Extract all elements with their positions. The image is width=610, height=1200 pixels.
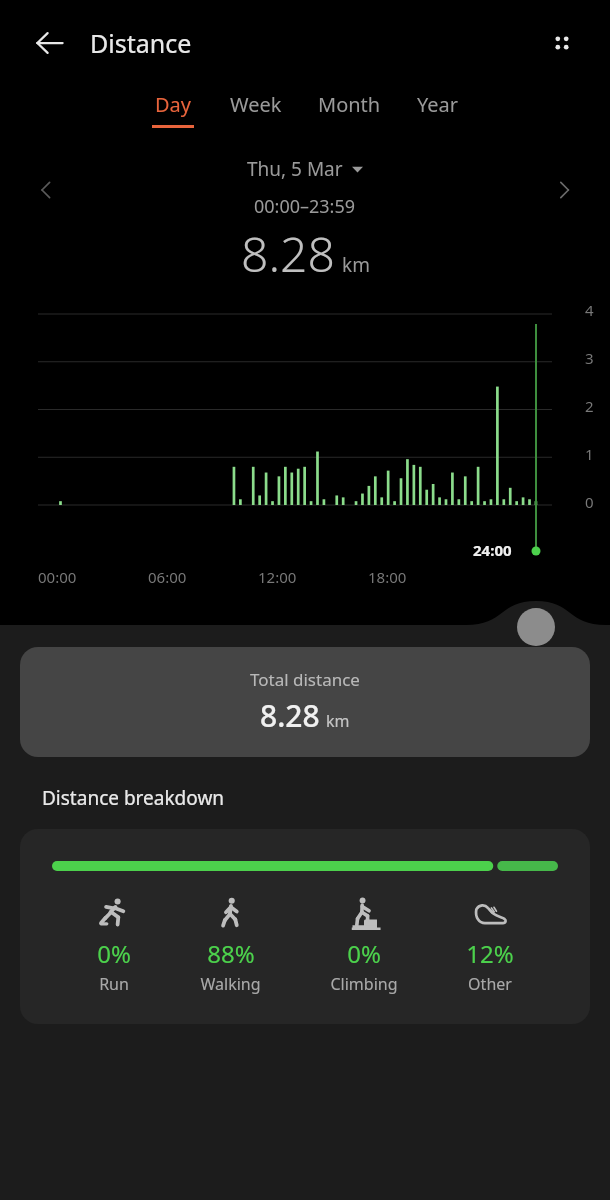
staticText: 18:00 — [368, 567, 407, 587]
staticText: km — [342, 252, 370, 278]
staticText: 00:00–23:59 — [254, 194, 356, 219]
staticText: 06:00 — [148, 567, 187, 587]
staticText: Year — [417, 91, 459, 118]
staticText: Run — [99, 973, 129, 995]
staticText: Day — [155, 91, 192, 118]
button[interactable] — [0, 292, 610, 582]
staticText: 00:00 — [38, 567, 77, 587]
staticText: 3 — [585, 348, 594, 368]
button[interactable]: More options — [536, 17, 588, 69]
button[interactable]: Day — [148, 85, 198, 134]
staticText: Other — [468, 973, 512, 995]
button[interactable]: Month — [314, 85, 385, 131]
staticText: Week — [230, 91, 282, 118]
staticText: 8.28 — [260, 695, 320, 736]
staticText: 2 — [585, 396, 594, 416]
button[interactable]: Thu, 5 Mar — [241, 152, 369, 186]
staticText: 24:00 — [473, 540, 512, 560]
staticText: Climbing — [330, 973, 398, 995]
staticText: 0% — [97, 937, 131, 970]
staticText: km — [326, 710, 350, 732]
staticText: 4 — [585, 300, 594, 320]
button[interactable]: Next day — [540, 166, 588, 214]
staticText: Distance breakdown — [42, 785, 225, 811]
staticText: Total distance — [250, 668, 360, 691]
staticText: 1 — [585, 444, 594, 464]
staticText: 0% — [347, 937, 381, 970]
staticText: Thu, 5 Mar — [247, 156, 343, 182]
staticText: 88% — [207, 937, 255, 970]
button[interactable]: 12% — [456, 893, 524, 997]
staticText: 12% — [466, 937, 514, 970]
button[interactable]: 88% — [190, 893, 271, 997]
button[interactable]: Year — [413, 85, 463, 131]
button[interactable]: Week — [226, 85, 286, 131]
staticText: 12:00 — [258, 567, 297, 587]
button[interactable]: 0% — [86, 893, 142, 997]
button[interactable]: Back — [22, 15, 78, 71]
button[interactable]: 0% — [20, 829, 590, 1024]
staticText: Month — [318, 91, 381, 118]
staticText: Walking — [200, 973, 261, 995]
button[interactable]: Total distance — [20, 647, 590, 757]
button[interactable]: 0% — [320, 893, 408, 997]
button[interactable]: Previous day — [22, 166, 70, 214]
button[interactable]: Chart scrubber handle — [517, 608, 555, 646]
staticText: 8.28 — [241, 221, 335, 286]
staticText: 0 — [585, 492, 594, 512]
staticText: Distance — [90, 26, 192, 60]
